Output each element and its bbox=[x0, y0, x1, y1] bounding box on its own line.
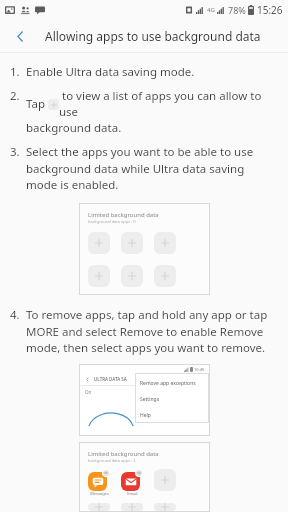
button[interactable]: Email bbox=[121, 469, 143, 496]
button[interactable]: Back bbox=[6, 22, 34, 50]
staticText: ULTRA DATA SA bbox=[94, 376, 127, 382]
staticText: 1. bbox=[10, 64, 26, 80]
staticText: Messages bbox=[90, 491, 109, 496]
button[interactable]: Add app bbox=[88, 503, 110, 511]
staticText: 10:45 bbox=[194, 367, 205, 372]
staticText: background data. bbox=[26, 120, 122, 136]
button[interactable]: Help bbox=[140, 412, 151, 419]
button[interactable]: Add app bbox=[121, 232, 143, 254]
staticText: Tap bbox=[26, 96, 48, 112]
staticText: Limited background data bbox=[88, 450, 159, 458]
button[interactable]: Add app bbox=[154, 469, 176, 491]
button[interactable]: Settings bbox=[140, 396, 160, 403]
staticText: 4. bbox=[10, 307, 26, 323]
staticText: background data apps : 0 bbox=[88, 219, 136, 224]
staticText: background data apps : 2 bbox=[88, 458, 136, 463]
button[interactable]: Messages bbox=[88, 469, 110, 496]
staticText: 78% bbox=[228, 4, 246, 16]
button[interactable]: Add app bbox=[121, 265, 143, 287]
staticText: To remove apps, tap and hold any app or … bbox=[26, 307, 274, 355]
staticText: Allowing apps to use background data bbox=[45, 28, 261, 44]
staticText: Select the apps you want to be able to u… bbox=[26, 144, 274, 192]
staticText: Limited background data bbox=[88, 211, 159, 219]
staticText: On bbox=[85, 389, 92, 395]
button[interactable]: Add app bbox=[88, 265, 110, 287]
button[interactable]: Add bbox=[48, 99, 59, 110]
staticText: 15:26 bbox=[257, 3, 283, 17]
button[interactable]: Add app bbox=[88, 232, 110, 254]
staticText: 4G bbox=[207, 6, 215, 14]
button[interactable]: Add app bbox=[154, 232, 176, 254]
staticText: to view a list of apps you can allow to … bbox=[59, 88, 274, 120]
staticText: Enable Ultra data saving mode. bbox=[26, 64, 195, 80]
button[interactable]: Add app bbox=[121, 503, 143, 511]
button[interactable]: Remove app exceptions bbox=[140, 380, 196, 387]
staticText: 2. bbox=[10, 88, 26, 104]
staticText: 3. bbox=[10, 144, 26, 160]
staticText: Email bbox=[127, 491, 138, 496]
button[interactable]: Add app bbox=[154, 503, 176, 511]
button[interactable]: Add app bbox=[154, 265, 176, 287]
